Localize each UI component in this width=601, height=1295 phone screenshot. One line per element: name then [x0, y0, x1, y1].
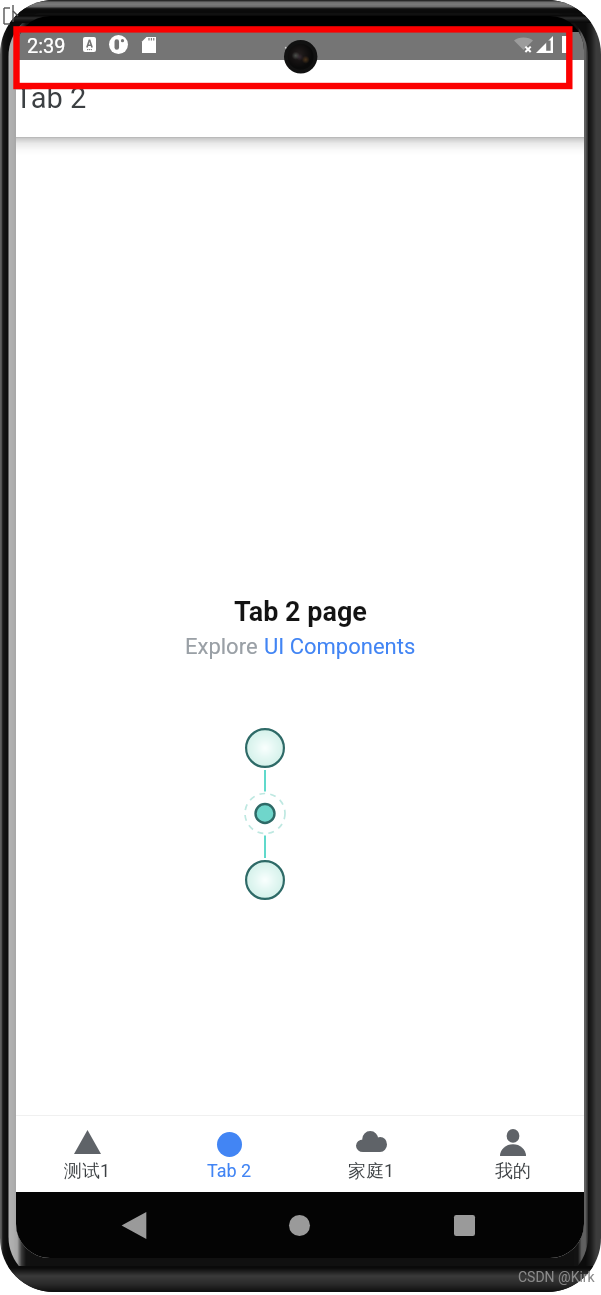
button[interactable]: Back: [117, 1208, 151, 1242]
staticText: 测试1: [64, 1160, 111, 1183]
button[interactable]: 测试1: [16, 1116, 158, 1192]
button[interactable]: Recent apps: [447, 1208, 481, 1242]
staticText: Tab 2: [207, 1160, 252, 1181]
staticText: Explore: [185, 634, 264, 660]
staticText: Tab 2 page: [234, 596, 367, 628]
button[interactable]: Tab 2: [158, 1116, 300, 1192]
button[interactable]: 家庭1: [300, 1116, 442, 1192]
button[interactable]: 我的: [442, 1116, 584, 1192]
staticText: Tab 2: [16, 81, 87, 115]
staticText: 我的: [495, 1160, 531, 1183]
button[interactable]: Home: [282, 1208, 316, 1242]
staticText: 2:39: [27, 34, 66, 57]
staticText: 家庭1: [348, 1160, 395, 1183]
staticText: UI Components: [264, 634, 416, 660]
staticText: CSDN @Kirk: [518, 1269, 595, 1285]
